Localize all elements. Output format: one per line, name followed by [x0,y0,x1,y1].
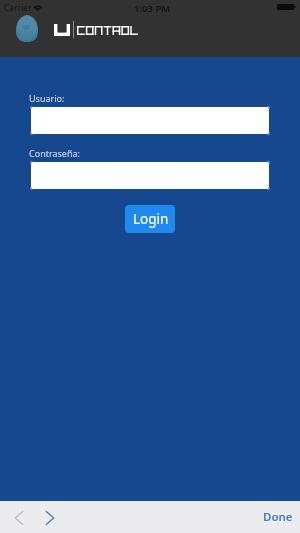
staticText: Login [133,210,169,228]
staticText: Carrier [4,2,32,14]
staticText: Done [263,509,293,525]
button[interactable]: Login [125,205,175,233]
button[interactable]: Done [255,503,300,531]
staticText: Contraseña: [29,147,80,159]
button[interactable] [30,161,270,190]
button[interactable]: Forward [36,504,63,531]
staticText: Usuario: [29,92,65,104]
button[interactable]: Back [5,504,32,531]
staticText: 1:03 PM [134,2,171,15]
button[interactable] [30,106,270,135]
